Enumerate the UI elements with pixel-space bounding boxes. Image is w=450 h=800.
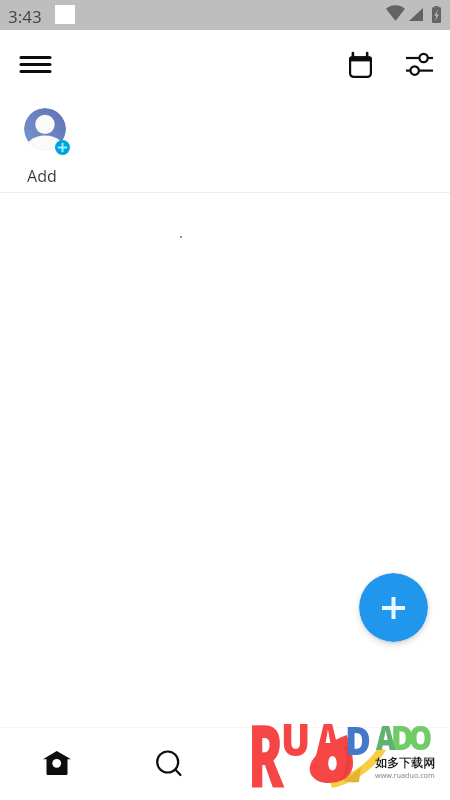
staticText: A <box>316 709 340 769</box>
staticText: www.ruaduo.com <box>375 770 435 780</box>
staticText: D <box>391 715 413 760</box>
button[interactable]: Add status <box>24 108 71 155</box>
button[interactable]: Menu <box>7 40 63 88</box>
staticText: O <box>409 715 433 760</box>
staticText: A <box>376 715 396 760</box>
button[interactable]: Search <box>136 728 199 800</box>
button[interactable]: Filter <box>396 40 444 88</box>
staticText: 3:43 <box>8 5 42 28</box>
staticText: 如多下载网 <box>375 755 435 770</box>
button[interactable]: Calendar <box>336 40 384 88</box>
button[interactable]: Add new <box>359 573 428 642</box>
staticText: Add <box>27 165 57 187</box>
staticText: U <box>281 709 311 769</box>
staticText: R <box>248 695 284 800</box>
staticText: D <box>345 713 371 766</box>
button[interactable]: Home <box>25 728 88 800</box>
